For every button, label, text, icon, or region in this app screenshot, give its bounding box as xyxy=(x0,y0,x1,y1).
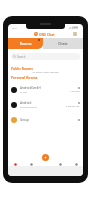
button[interactable]: Home xyxy=(11,160,19,168)
button[interactable]: Rooms xyxy=(8,38,43,49)
staticText: 9:41 xyxy=(12,26,17,29)
button[interactable]: Profile xyxy=(73,32,77,36)
staticText: Hi! whats up bro xyxy=(20,106,37,109)
staticText: Hi Talk xyxy=(20,91,27,94)
staticText: AndroidGeekH xyxy=(20,86,41,90)
button[interactable]: Search xyxy=(11,53,80,60)
staticText: No public rooms available xyxy=(11,71,80,74)
staticText: Chats xyxy=(58,41,68,46)
staticText: ONE Chat xyxy=(39,32,55,36)
staticText: a few sec ago xyxy=(66,105,80,108)
button[interactable]: Group xyxy=(11,112,80,127)
staticText: Search xyxy=(17,55,26,59)
staticText: Group xyxy=(20,118,29,122)
button[interactable]: Chats xyxy=(43,38,83,49)
button[interactable]: Profile xyxy=(72,160,80,168)
button[interactable]: New chat xyxy=(42,154,49,161)
button[interactable]: Rooms xyxy=(27,160,35,168)
button[interactable]: Android xyxy=(11,97,80,112)
staticText: Personal Rooms xyxy=(11,75,38,79)
staticText: 1 min ago xyxy=(70,90,80,93)
button[interactable]: AndroidGeekH xyxy=(11,82,80,97)
staticText: Public Rooms xyxy=(11,66,33,70)
button[interactable]: Calls xyxy=(56,160,64,168)
staticText: Rooms xyxy=(20,41,32,46)
staticText: Android xyxy=(20,101,32,105)
